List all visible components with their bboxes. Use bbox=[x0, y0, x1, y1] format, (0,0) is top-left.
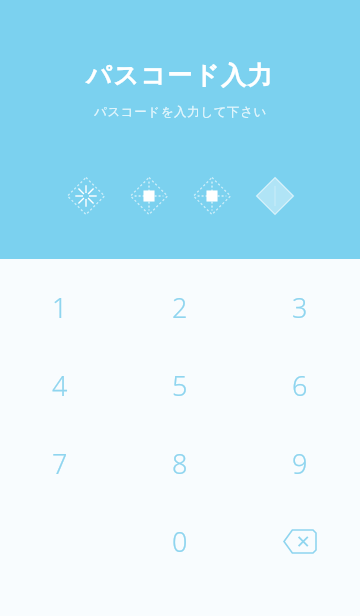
staticText: 2 bbox=[172, 289, 188, 326]
button[interactable]: 0 bbox=[120, 502, 240, 580]
button[interactable]: 7 bbox=[0, 424, 120, 502]
staticText: 9 bbox=[292, 445, 308, 482]
button[interactable]: 1 bbox=[0, 268, 120, 346]
staticText: 8 bbox=[172, 445, 188, 482]
button[interactable]: 4 bbox=[0, 346, 120, 424]
button[interactable]: Delete bbox=[240, 502, 360, 580]
staticText: 7 bbox=[52, 445, 68, 482]
staticText: 5 bbox=[172, 367, 188, 404]
staticText: 3 bbox=[292, 289, 308, 326]
staticText: 0 bbox=[172, 523, 188, 560]
staticText: パスコード入力 bbox=[86, 60, 274, 91]
staticText: 1 bbox=[52, 289, 68, 326]
staticText: 4 bbox=[52, 367, 68, 404]
button[interactable]: 8 bbox=[120, 424, 240, 502]
staticText: 6 bbox=[292, 367, 308, 404]
button[interactable]: 2 bbox=[120, 268, 240, 346]
button[interactable]: 5 bbox=[120, 346, 240, 424]
button[interactable]: 6 bbox=[240, 346, 360, 424]
staticText: パスコードを入力して下さい bbox=[94, 104, 267, 120]
button[interactable]: 9 bbox=[240, 424, 360, 502]
button[interactable]: 3 bbox=[240, 268, 360, 346]
